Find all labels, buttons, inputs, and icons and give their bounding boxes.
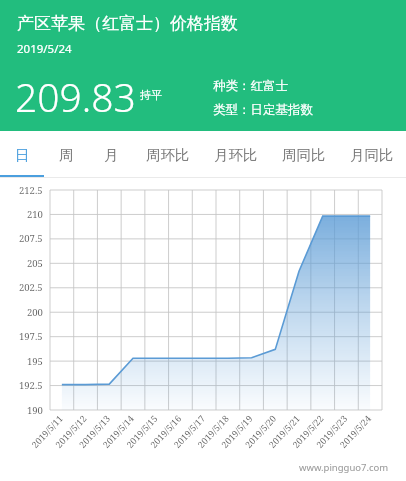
button[interactable]: 周环比 [134, 131, 202, 178]
button[interactable]: 月 [89, 131, 134, 178]
button[interactable]: 月环比 [202, 131, 270, 178]
staticText: 209.83 [15, 70, 136, 123]
staticText: 月同比 [350, 146, 394, 164]
button[interactable]: 周同比 [270, 131, 338, 178]
staticText: 种类：红富士 [213, 78, 288, 94]
staticText: 持平 [140, 88, 162, 102]
button[interactable]: 日 [0, 131, 44, 178]
button[interactable]: 周 [44, 131, 89, 178]
staticText: 月环比 [214, 146, 258, 164]
staticText: 月 [104, 146, 119, 164]
staticText: 产区苹果（红富士）价格指数 [17, 13, 238, 34]
staticText: 周 [59, 146, 74, 164]
staticText: 日 [15, 146, 30, 164]
staticText: 类型：日定基指数 [213, 102, 313, 118]
button[interactable]: 月同比 [338, 131, 406, 178]
staticText: 周同比 [282, 146, 326, 164]
staticText: 周环比 [146, 146, 190, 164]
staticText: 2019/5/24 [17, 41, 72, 57]
